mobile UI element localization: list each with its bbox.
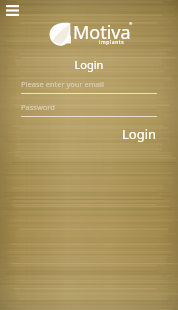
staticText: ® xyxy=(129,21,133,26)
staticText: implants xyxy=(99,39,125,46)
staticText: Motiva xyxy=(73,20,131,45)
button[interactable]: Open navigation menu xyxy=(2,1,22,19)
staticText: Please enter your email xyxy=(21,79,104,89)
button[interactable]: Login xyxy=(104,124,157,144)
button[interactable]: Password xyxy=(21,102,157,117)
button[interactable]: Please enter your email xyxy=(21,79,157,94)
staticText: Login xyxy=(0,57,178,72)
staticText: Login xyxy=(122,125,157,143)
staticText: Password xyxy=(21,102,55,112)
